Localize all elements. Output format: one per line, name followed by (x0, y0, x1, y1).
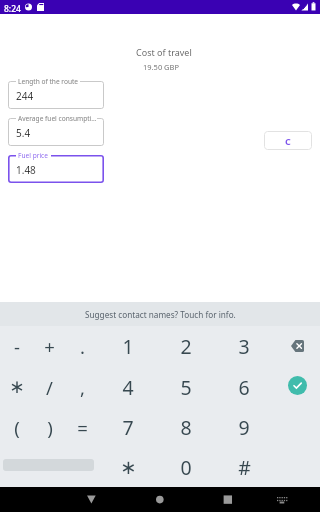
button[interactable]: # (215, 447, 273, 487)
staticText: 5.4 (16, 126, 31, 140)
button[interactable]: Change keyboard (277, 497, 287, 504)
button[interactable]: ( (0, 407, 33, 447)
staticText: 9 (238, 414, 250, 441)
button[interactable]: ) (33, 407, 66, 447)
staticText: Length of the route (18, 77, 79, 86)
staticText: Fuel price (18, 151, 48, 160)
button[interactable]: Length of the route (8, 81, 104, 109)
staticText: 4 (122, 374, 134, 401)
staticText: ∗ (120, 456, 137, 479)
button[interactable]: ∗ (99, 447, 157, 487)
button[interactable]: 6 (215, 367, 273, 407)
staticText: 5 (180, 374, 192, 401)
button[interactable]: - (0, 326, 33, 367)
button[interactable]: Fuel price (8, 155, 104, 183)
staticText: 3 (238, 333, 250, 360)
staticText: Cost of travel (136, 46, 192, 58)
button[interactable]: C (264, 131, 312, 150)
button[interactable]: ∗ (0, 367, 33, 407)
staticText: 7 (122, 414, 134, 441)
staticText: Suggest contact names? Touch for info. (85, 309, 236, 320)
staticText: 8 (180, 414, 192, 441)
button[interactable]: 3 (215, 326, 273, 367)
button[interactable]: Home (151, 489, 169, 507)
button[interactable]: Recents (219, 489, 237, 507)
staticText: ) (47, 415, 53, 440)
button[interactable]: = (66, 407, 99, 447)
staticText: 2 (180, 333, 192, 360)
button[interactable]: 4 (99, 367, 157, 407)
staticText: , (80, 375, 85, 400)
staticText: + (44, 334, 55, 359)
button[interactable]: 0 (157, 447, 215, 487)
staticText: - (14, 334, 20, 359)
staticText: ( (14, 415, 20, 440)
staticText: Average fuel consumpti... (18, 114, 97, 123)
button[interactable]: 7 (99, 407, 157, 447)
button[interactable]: 2 (157, 326, 215, 367)
button[interactable]: , (66, 367, 99, 407)
staticText: # (238, 454, 251, 481)
staticText: . (80, 334, 85, 359)
button[interactable]: Enter (288, 376, 307, 395)
button[interactable]: Suggest contact names? Touch for info. (0, 302, 320, 326)
staticText: 8:24 (4, 3, 21, 15)
button[interactable]: 9 (215, 407, 273, 447)
button[interactable]: 1 (99, 326, 157, 367)
staticText: ∗ (9, 376, 25, 398)
button[interactable]: / (33, 367, 66, 407)
staticText: 1 (122, 333, 134, 360)
staticText: / (46, 375, 53, 400)
staticText: 6 (238, 374, 250, 401)
button[interactable]: 5 (157, 367, 215, 407)
button[interactable]: . (66, 326, 99, 367)
button[interactable]: Backspace (291, 340, 304, 352)
staticText: 19.50 GBP (143, 62, 179, 72)
staticText: 244 (16, 89, 34, 103)
staticText: C (285, 135, 291, 147)
button[interactable]: Average fuel consumpti... (8, 118, 104, 146)
staticText: 0 (180, 454, 192, 481)
button[interactable]: 8 (157, 407, 215, 447)
button[interactable]: + (33, 326, 66, 367)
staticText: 1.48 (16, 163, 36, 177)
button[interactable]: Back (82, 489, 100, 507)
staticText: = (77, 415, 88, 440)
